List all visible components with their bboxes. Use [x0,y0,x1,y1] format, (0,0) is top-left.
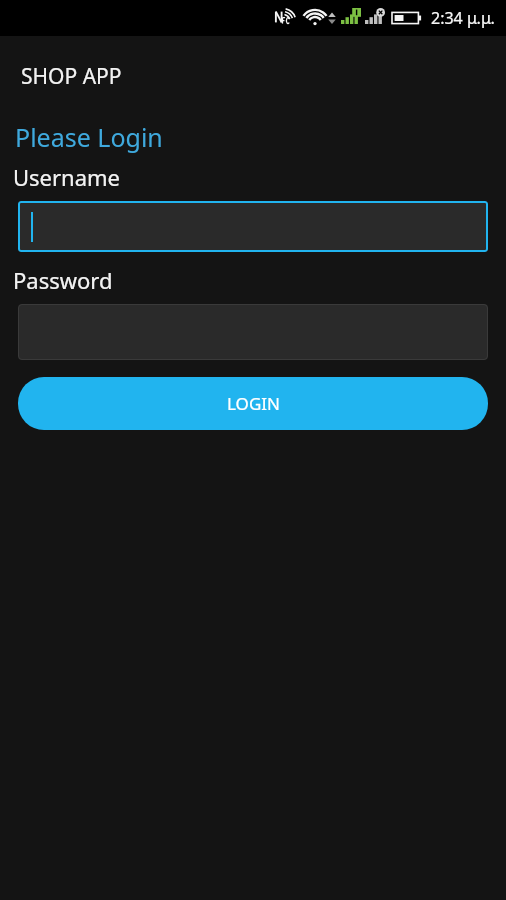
button[interactable] [18,304,488,360]
staticText: 2:34 μ.μ. [431,7,495,29]
button[interactable] [18,201,488,252]
button[interactable]: LOGIN [18,377,488,430]
staticText: Please Login [15,120,163,154]
staticText: Username [13,162,121,192]
staticText: LOGIN [227,392,280,415]
staticText: Password [13,265,113,295]
staticText: SHOP APP [21,62,122,91]
